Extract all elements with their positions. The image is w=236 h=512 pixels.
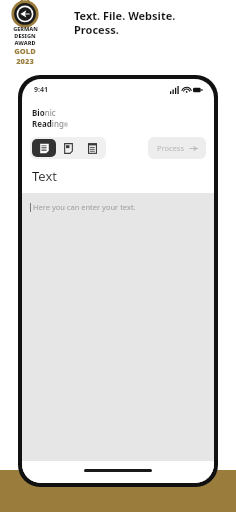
staticText: 9:41 bbox=[34, 85, 48, 95]
staticText: DESIGN bbox=[14, 32, 36, 39]
button[interactable]: Here you can enter your text. bbox=[22, 193, 214, 461]
staticText: GOLD bbox=[14, 46, 36, 56]
button[interactable]: Website input bbox=[80, 139, 104, 157]
button[interactable]: Process bbox=[157, 137, 197, 159]
staticText: Reading® bbox=[32, 118, 68, 129]
button[interactable]: Text input bbox=[32, 139, 56, 157]
staticText: Text bbox=[32, 167, 57, 185]
staticText: Here you can enter your text. bbox=[33, 202, 136, 212]
staticText: Bionic bbox=[32, 107, 56, 118]
staticText: Text. File. Website. Process. bbox=[74, 8, 176, 37]
staticText: Process bbox=[157, 143, 185, 153]
staticText: 2023 bbox=[16, 56, 34, 66]
staticText: AWARD bbox=[14, 39, 36, 46]
button[interactable]: File input bbox=[56, 139, 80, 157]
staticText: GERMAN bbox=[13, 25, 38, 32]
